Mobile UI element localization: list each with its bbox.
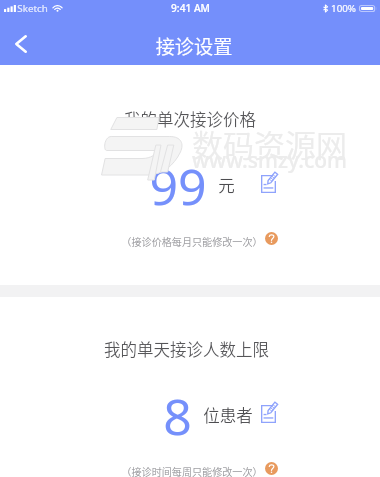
staticText: （接诊时间每周只能修改一次） — [121, 464, 263, 477]
staticText: 我的单天接诊人数上限 — [104, 337, 269, 361]
button[interactable]: Back — [1, 24, 41, 64]
button[interactable]: Help — [265, 232, 278, 245]
staticText: 我的单次接诊价格 — [124, 107, 256, 131]
staticText: （接诊价格每月只能修改一次） — [121, 234, 263, 249]
staticText: www.smzy.com — [192, 146, 347, 175]
staticText: 数码资源网 — [192, 121, 347, 166]
staticText: Sketch — [17, 2, 48, 15]
button[interactable]: Help — [265, 462, 278, 475]
staticText: 100% — [331, 2, 356, 15]
staticText: 9:41 AM — [171, 1, 210, 15]
staticText: 8 — [163, 382, 192, 450]
button[interactable]: Edit daily patient limit — [256, 402, 280, 426]
staticText: 接诊设置 — [4, 32, 380, 60]
staticText: 99 — [149, 152, 207, 220]
button[interactable]: Edit consultation price — [256, 172, 280, 196]
staticText: 位患者 — [203, 403, 253, 427]
staticText: 元 — [218, 173, 235, 197]
